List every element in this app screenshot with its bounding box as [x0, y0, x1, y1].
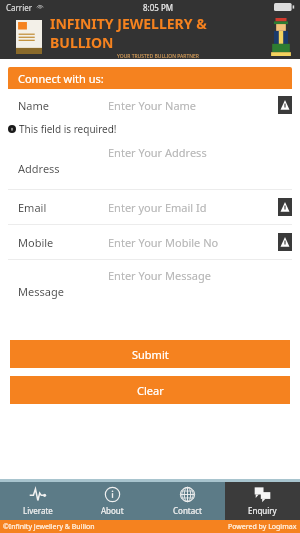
staticText: Liverate [23, 505, 53, 516]
staticText: Connect with us: [18, 71, 104, 86]
other: Required field warning [278, 96, 292, 114]
button[interactable]: Enter Your Message [8, 260, 292, 312]
other: Enquiry [254, 486, 271, 503]
staticText: Email [18, 200, 47, 215]
staticText: Message [18, 284, 64, 299]
button[interactable]: Email [8, 190, 292, 224]
staticText: Enter Your Address [108, 145, 207, 160]
staticText: Submit [132, 347, 169, 362]
button[interactable]: Submit [10, 340, 290, 368]
staticText: Address [18, 161, 60, 176]
staticText: Enter Your Mobile No [108, 235, 219, 250]
other: Live rate [29, 486, 46, 503]
staticText: Enter Your Message [108, 268, 211, 283]
other: Required field warning [278, 233, 292, 251]
button[interactable]: About [75, 482, 150, 520]
staticText: ©Infinity Jewellery & Bullion [3, 522, 95, 532]
button[interactable]: Live rate [0, 482, 75, 520]
button[interactable]: Name [8, 89, 292, 121]
staticText: About [101, 505, 124, 516]
button[interactable]: Mobile [8, 225, 292, 259]
staticText: Enter Your Name [108, 98, 197, 113]
button[interactable]: Enquiry [225, 482, 300, 520]
other: Contact [179, 486, 196, 503]
staticText: Carrier [6, 2, 33, 13]
staticText: Enquiry [248, 505, 277, 516]
button[interactable]: Clear [10, 376, 290, 404]
other: Required field warning [278, 198, 292, 216]
other: About [104, 486, 121, 503]
staticText: YOUR TRUSTED BULLION PARTNER [117, 53, 199, 59]
staticText: This field is required! [19, 122, 117, 136]
staticText: Powered by Logimax [228, 522, 297, 532]
button[interactable]: Contact [150, 482, 225, 520]
button[interactable]: Enter Your Address [8, 137, 292, 189]
staticText: 8:05 PM [143, 2, 174, 13]
staticText: Enter your Email Id [108, 200, 207, 215]
staticText: Contact [173, 505, 202, 516]
staticText: Mobile [18, 235, 54, 250]
staticText: INFINITY JEWELLERY & BULLION [50, 14, 266, 52]
staticText: Clear [137, 383, 164, 398]
button[interactable]: Connect with us: [8, 67, 292, 89]
staticText: Name [18, 98, 50, 113]
